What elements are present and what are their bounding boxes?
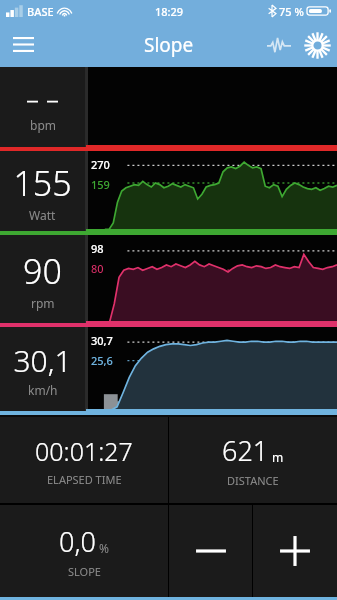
staticText: 155 bbox=[13, 160, 72, 206]
staticText: DISTANCE bbox=[227, 473, 279, 488]
staticText: 270 bbox=[91, 157, 110, 172]
button[interactable]: – – bbox=[0, 67, 85, 147]
staticText: m bbox=[272, 449, 284, 465]
button[interactable]: 621 bbox=[169, 417, 337, 503]
staticText: Slope bbox=[144, 32, 194, 58]
staticText: 30,7 bbox=[91, 333, 113, 348]
button[interactable]: Live graph bbox=[261, 27, 297, 63]
staticText: % bbox=[99, 540, 109, 556]
button[interactable]: Settings bbox=[297, 25, 337, 65]
staticText: 00:01:27 bbox=[35, 434, 133, 468]
staticText: SLOPE bbox=[68, 564, 101, 579]
button[interactable]: 90 bbox=[0, 235, 85, 323]
staticText: 98 bbox=[91, 241, 104, 256]
button[interactable]: 155 bbox=[0, 151, 85, 231]
staticText: rpm bbox=[31, 295, 55, 311]
staticText: 621 bbox=[222, 432, 269, 469]
staticText: 80 bbox=[91, 261, 104, 276]
button[interactable]: Menu bbox=[0, 22, 46, 67]
staticText: – – bbox=[26, 81, 59, 116]
staticText: 30,1 bbox=[13, 340, 72, 381]
staticText: 18:29 bbox=[155, 4, 184, 19]
button[interactable]: 30,1 bbox=[0, 327, 85, 411]
button[interactable]: 00:01:27 bbox=[0, 417, 168, 503]
staticText: ELAPSED TIME bbox=[47, 472, 122, 487]
staticText: 159 bbox=[91, 177, 110, 192]
button[interactable]: 0,0 bbox=[0, 505, 168, 597]
staticText: 25,6 bbox=[91, 353, 113, 368]
staticText: 75 % bbox=[279, 4, 304, 19]
staticText: Watt bbox=[29, 207, 56, 223]
staticText: 0,0 bbox=[59, 523, 96, 560]
staticText: 90 bbox=[23, 248, 62, 294]
button[interactable]: Decrease slope bbox=[169, 505, 252, 597]
staticText: BASE bbox=[27, 4, 54, 19]
staticText: km/h bbox=[28, 382, 58, 398]
button[interactable]: Increase slope bbox=[253, 505, 337, 597]
staticText: bpm bbox=[30, 117, 56, 133]
